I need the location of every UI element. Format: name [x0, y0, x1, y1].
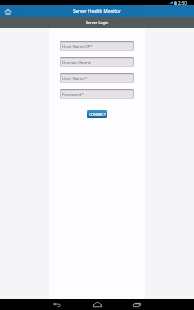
staticText: Server Health Monitor: [73, 8, 121, 14]
button[interactable]: CONNECT: [87, 110, 107, 118]
staticText: 2:50: [178, 0, 187, 5]
staticText: User Name*: [62, 75, 87, 81]
button[interactable]: Back: [44, 299, 70, 310]
staticText: CONNECT: [89, 112, 106, 117]
staticText: Password*: [62, 91, 84, 97]
button[interactable]: Domain Name: [60, 57, 134, 67]
button[interactable]: User Name*: [60, 73, 134, 83]
staticText: Domain Name: [62, 59, 92, 65]
button[interactable]: Recent apps: [124, 299, 150, 310]
button[interactable]: Password*: [60, 89, 134, 99]
button[interactable]: Home: [3, 7, 13, 17]
button[interactable]: Host Name/IP*: [60, 41, 134, 51]
staticText: Host Name/IP*: [62, 43, 93, 49]
button[interactable]: Home: [84, 299, 110, 310]
staticText: Server Login: [86, 20, 109, 25]
